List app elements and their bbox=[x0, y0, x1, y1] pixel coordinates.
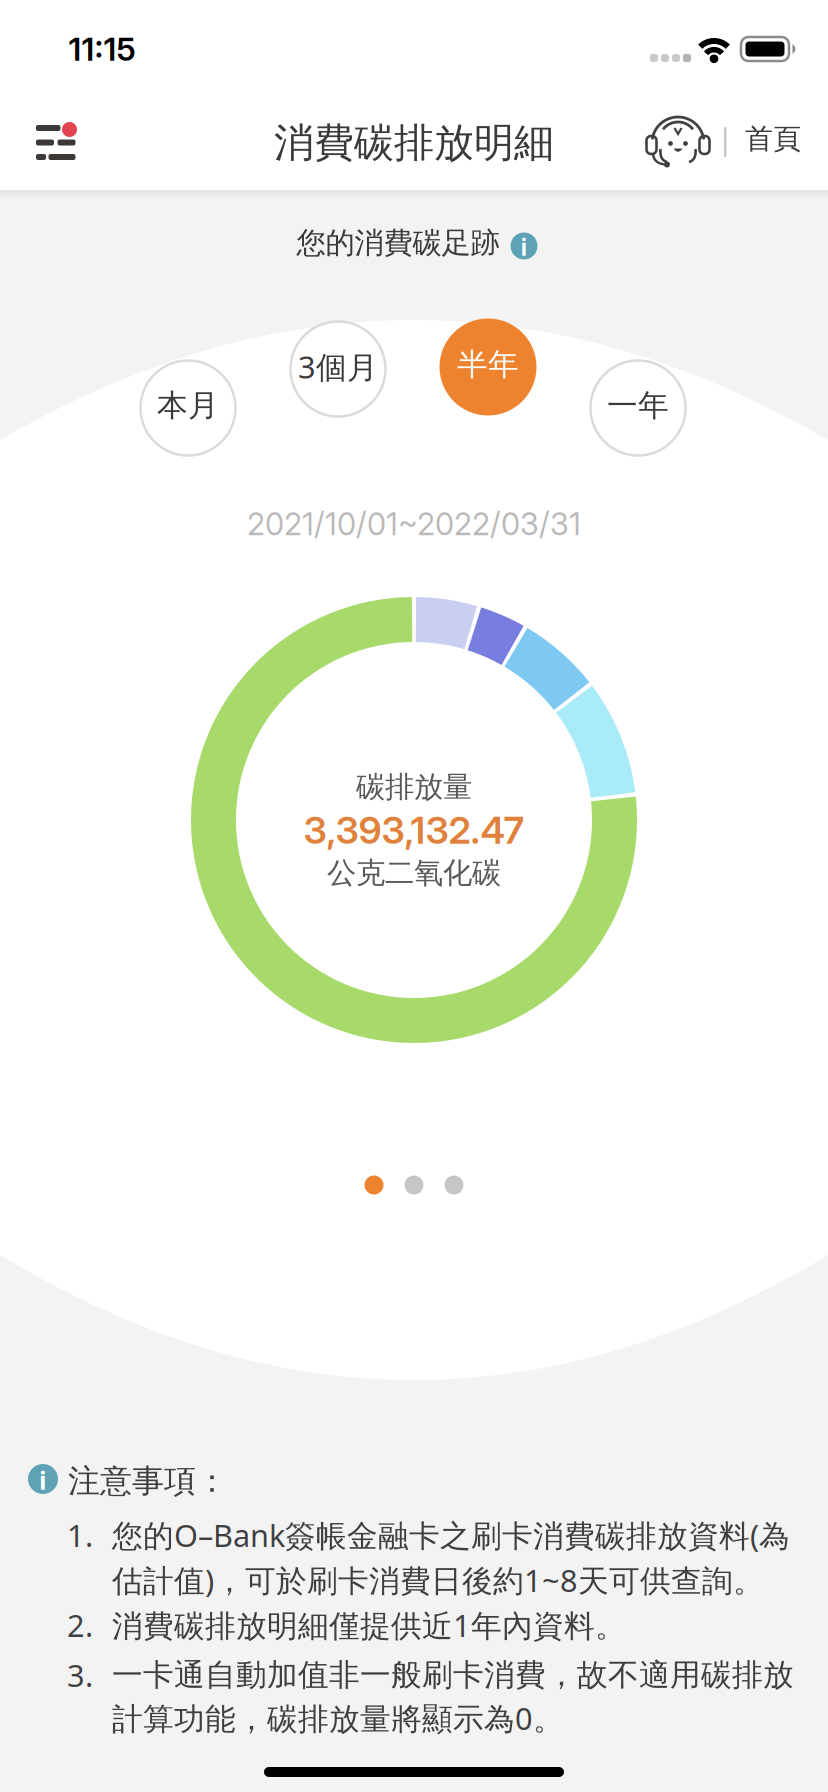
staticText: 11:15 bbox=[68, 30, 135, 68]
staticText: i bbox=[39, 1463, 47, 1497]
staticText: 公克二氧化碳 bbox=[327, 855, 501, 891]
button[interactable]: 說明 bbox=[510, 232, 537, 259]
staticText: 本月 bbox=[157, 387, 219, 424]
staticText: 計算功能，碳排放量將顯示為0。 bbox=[112, 1698, 564, 1738]
staticText: 消費碳排放明細僅提供近1年內資料。 bbox=[112, 1605, 626, 1645]
button[interactable]: 3個月 bbox=[289, 320, 387, 418]
staticText: 一年 bbox=[607, 387, 669, 424]
button[interactable]: 一年 bbox=[589, 359, 687, 457]
staticText: 3,393,132.47 bbox=[303, 807, 524, 853]
staticText: 2. bbox=[67, 1605, 93, 1645]
staticText: 您的消費碳足跡 bbox=[296, 225, 499, 261]
staticText: 估計值)，可於刷卡消費日後約1~8天可供查詢。 bbox=[112, 1560, 764, 1600]
button[interactable]: 本月 bbox=[139, 359, 237, 457]
staticText: 首頁 bbox=[745, 122, 801, 156]
staticText: 碳排放量 bbox=[356, 769, 472, 805]
staticText: 2021/10/01~2022/03/31 bbox=[247, 505, 581, 542]
staticText: 3個月 bbox=[298, 346, 378, 387]
staticText: i bbox=[520, 232, 527, 262]
button[interactable]: 首頁 bbox=[745, 122, 801, 156]
staticText: 消費碳排放明細 bbox=[274, 118, 554, 167]
button[interactable]: 客服 bbox=[646, 111, 710, 175]
button[interactable]: 選單 bbox=[36, 124, 77, 161]
staticText: 半年 bbox=[457, 346, 519, 383]
staticText: 3. bbox=[67, 1655, 93, 1695]
button[interactable]: 半年 bbox=[439, 318, 537, 416]
staticText: 注意事項： bbox=[68, 1461, 228, 1501]
staticText: 您的O–Bank簽帳金融卡之刷卡消費碳排放資料(為 bbox=[112, 1515, 790, 1555]
staticText: 一卡通自動加值非一般刷卡消費，故不適用碳排放 bbox=[112, 1656, 794, 1694]
staticText: 1. bbox=[67, 1515, 93, 1555]
